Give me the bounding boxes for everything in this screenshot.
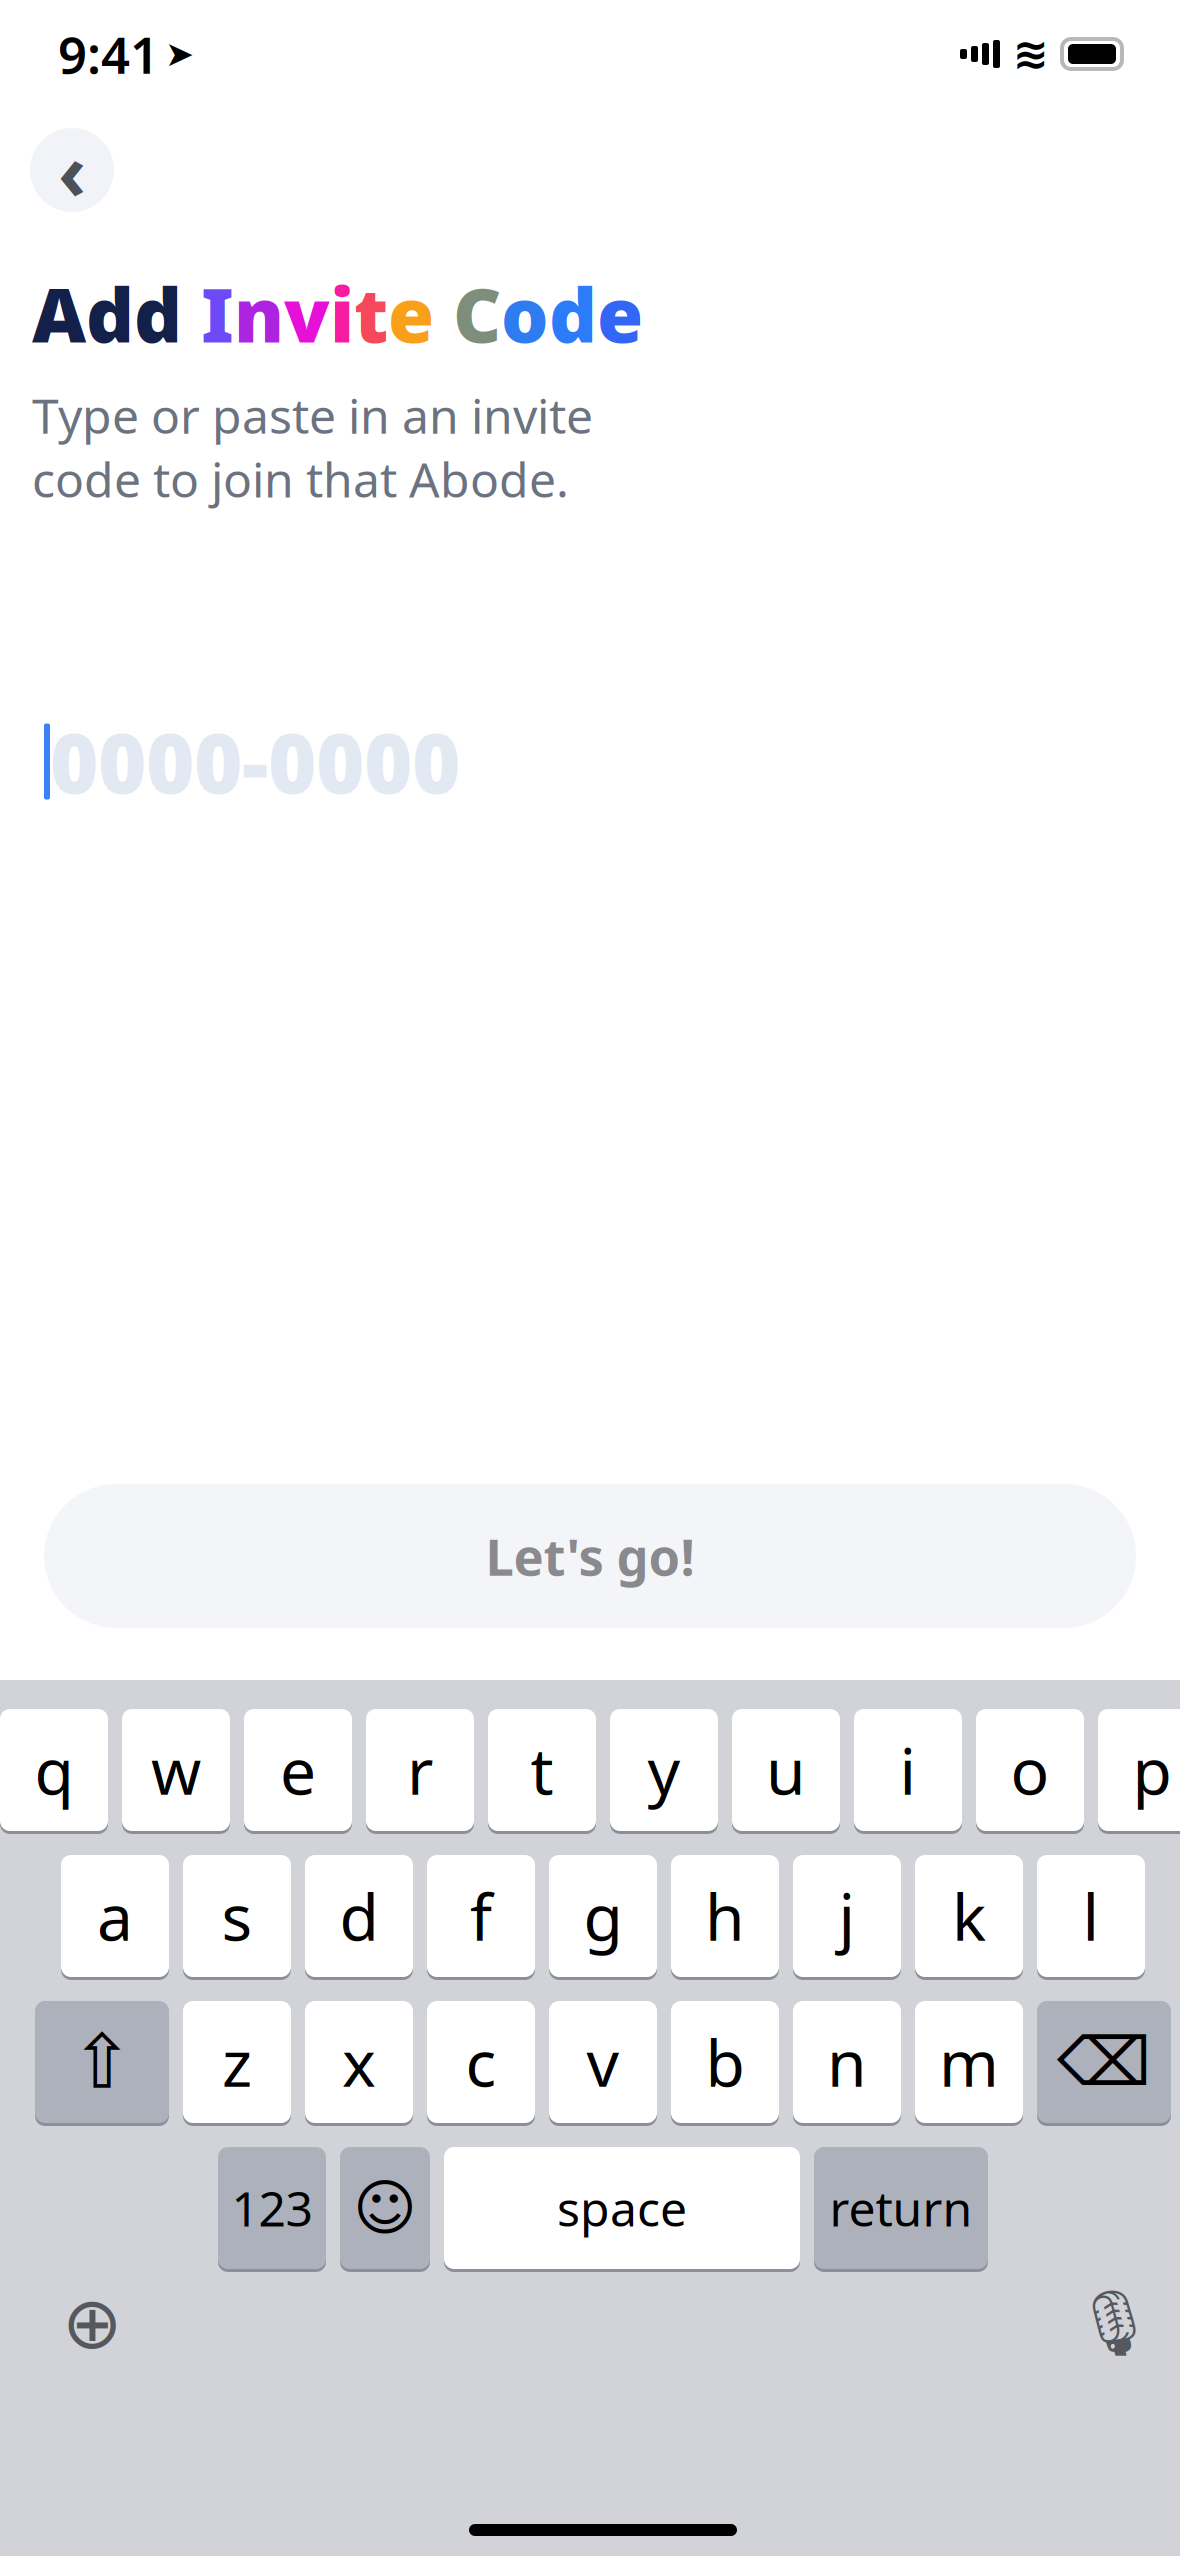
button[interactable]: h <box>671 1852 779 1980</box>
button[interactable]: l <box>1037 1852 1145 1980</box>
button[interactable]: o <box>976 1706 1084 1834</box>
button[interactable]: Delete <box>1037 1998 1171 2126</box>
staticText: e <box>597 264 643 363</box>
staticText: d <box>549 264 597 363</box>
staticText: e <box>280 1727 316 1812</box>
staticText: ➤ <box>165 34 194 74</box>
staticText: ⇧ <box>70 2020 133 2104</box>
staticText: a <box>97 1873 133 1958</box>
button[interactable]: Back <box>30 128 114 212</box>
button[interactable]: f <box>427 1852 535 1980</box>
staticText: o <box>1010 1727 1049 1812</box>
button[interactable]: e <box>244 1706 352 1834</box>
button[interactable]: u <box>732 1706 840 1834</box>
staticText: z <box>222 2019 252 2104</box>
button[interactable]: s <box>183 1852 291 1980</box>
staticText: l <box>1082 1873 1099 1958</box>
staticText: d <box>339 1873 378 1958</box>
staticText: y <box>647 1727 680 1812</box>
staticText: s <box>221 1873 252 1958</box>
staticText: i <box>899 1727 916 1812</box>
button[interactable]: return <box>814 2144 988 2272</box>
button[interactable]: g <box>549 1852 657 1980</box>
staticText: Let's go! <box>485 1522 694 1590</box>
staticText: ⌫ <box>1057 2024 1151 2100</box>
staticText: 9:41 <box>58 20 159 88</box>
button[interactable]: c <box>427 1998 535 2126</box>
staticText: ≋ <box>1013 30 1049 78</box>
staticText: return <box>829 2176 972 2240</box>
button[interactable]: ☺ <box>340 2144 430 2272</box>
staticText: x <box>342 2019 376 2104</box>
button[interactable]: r <box>366 1706 474 1834</box>
button[interactable]: q <box>0 1706 108 1834</box>
staticText: space <box>557 2176 687 2240</box>
staticText: b <box>705 2019 744 2104</box>
staticText: c <box>465 2019 496 2104</box>
staticText: t <box>530 1727 553 1812</box>
button[interactable]: Let's go! <box>44 1484 1136 1628</box>
staticText: v <box>586 2019 619 2104</box>
button[interactable]: w <box>122 1706 230 1834</box>
button[interactable]: Shift <box>35 1998 169 2126</box>
staticText: g <box>583 1873 622 1958</box>
staticText: f <box>470 1873 492 1958</box>
staticText: r <box>407 1727 433 1812</box>
staticText: t <box>354 264 388 363</box>
button[interactable]: p <box>1098 1706 1180 1834</box>
staticText: o <box>501 264 549 363</box>
button[interactable]: a <box>61 1852 169 1980</box>
staticText: e <box>388 264 434 363</box>
button[interactable]: n <box>793 1998 901 2126</box>
button[interactable]: i <box>854 1706 962 1834</box>
staticText: j <box>838 1873 855 1958</box>
staticText: m <box>939 2019 999 2104</box>
staticText: v <box>284 264 330 363</box>
staticText: Type or paste in an invite code to join … <box>32 383 593 511</box>
staticText: n <box>827 2019 867 2104</box>
staticText: ☺ <box>353 2173 417 2243</box>
button[interactable]: d <box>305 1852 413 1980</box>
staticText: I <box>201 264 234 363</box>
button[interactable]: Switch keyboard <box>47 2278 137 2368</box>
button[interactable]: j <box>793 1852 901 1980</box>
button[interactable]: y <box>610 1706 718 1834</box>
button[interactable]: t <box>488 1706 596 1834</box>
staticText: ⊕ <box>62 2282 122 2364</box>
button[interactable]: 123 <box>218 2144 326 2272</box>
staticText: Add <box>32 264 182 363</box>
button[interactable]: space <box>444 2144 800 2272</box>
staticText: C <box>453 264 501 363</box>
staticText: ‹ <box>58 119 86 221</box>
button[interactable]: z <box>183 1998 291 2126</box>
staticText: i <box>330 264 354 363</box>
staticText: p <box>1132 1727 1171 1812</box>
button[interactable]: b <box>671 1998 779 2126</box>
staticText: n <box>234 264 284 363</box>
button[interactable]: Dictate <box>1069 2278 1159 2368</box>
staticText: u <box>766 1727 806 1812</box>
button[interactable]: v <box>549 1998 657 2126</box>
button[interactable]: k <box>915 1852 1023 1980</box>
staticText: w <box>151 1727 201 1812</box>
button[interactable]: m <box>915 1998 1023 2126</box>
staticText: h <box>705 1873 745 1958</box>
staticText: 0000-0000 <box>50 707 460 816</box>
button[interactable]: x <box>305 1998 413 2126</box>
staticText: 🎙 <box>1073 2286 1154 2359</box>
staticText: k <box>952 1873 986 1958</box>
staticText: 123 <box>231 2176 312 2240</box>
staticText: q <box>34 1727 73 1812</box>
